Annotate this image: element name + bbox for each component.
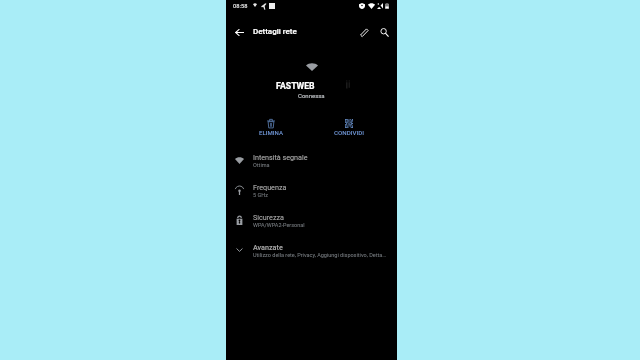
button[interactable]: Cerca bbox=[374, 22, 394, 42]
staticText: CONDIVIDI bbox=[334, 129, 365, 136]
staticText: 08:58 bbox=[233, 3, 248, 10]
staticText: ELIMINA bbox=[259, 129, 283, 136]
staticText: Dettagli rete bbox=[253, 27, 297, 36]
button[interactable]: CONDIVIDI bbox=[327, 113, 371, 139]
button[interactable]: Indietro bbox=[229, 22, 250, 43]
staticText: Avanzate bbox=[253, 243, 283, 251]
staticText: Connessa bbox=[298, 92, 325, 99]
button[interactable]: Avanzate bbox=[226, 235, 397, 265]
staticText: 5 GHz bbox=[253, 192, 268, 198]
staticText: Utilizzo della rete, Privacy, Aggiungi d… bbox=[253, 252, 386, 258]
button[interactable]: Intensità segnale bbox=[226, 145, 397, 175]
staticText: Ottima bbox=[253, 162, 270, 168]
staticText: FASTWEB bbox=[276, 81, 315, 91]
staticText: WPA/WPA2-Personal bbox=[253, 222, 305, 228]
staticText: Frequenza bbox=[253, 183, 287, 191]
staticText: Sicurezza bbox=[253, 213, 284, 221]
button[interactable]: ELIMINA bbox=[249, 113, 293, 139]
staticText: Intensità segnale bbox=[253, 153, 308, 161]
button[interactable]: Modifica bbox=[354, 22, 374, 42]
button[interactable]: Frequenza bbox=[226, 175, 397, 205]
button[interactable]: Sicurezza bbox=[226, 205, 397, 235]
